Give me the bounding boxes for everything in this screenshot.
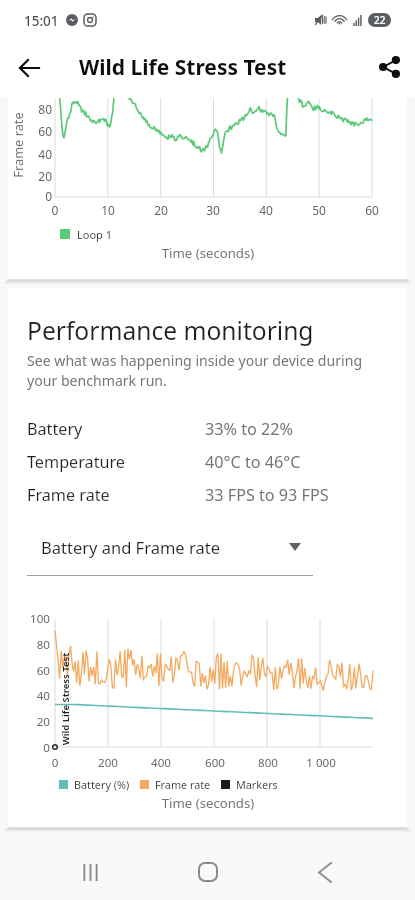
button[interactable]: Battery and Frame rate <box>27 524 313 576</box>
staticText: 80 <box>18 637 50 653</box>
staticText: 15:01 <box>24 12 59 27</box>
staticText: 20 <box>149 202 173 218</box>
staticText: 40 <box>18 688 50 704</box>
staticText: 40°C to 46°C <box>205 451 301 473</box>
button[interactable]: Share <box>367 38 411 96</box>
staticText: Temperature <box>27 451 125 473</box>
staticText: Battery <box>27 418 83 440</box>
staticText: Frame rate <box>27 484 110 506</box>
staticText: 30 <box>201 202 225 218</box>
staticText: Loop 1 <box>77 227 112 242</box>
staticText: Wild Life Stress Test <box>59 639 72 759</box>
staticText: Performance monitoring <box>27 314 314 348</box>
staticText: 40 <box>254 202 278 218</box>
staticText: 33 FPS to 93 FPS <box>205 484 329 506</box>
button[interactable]: Back <box>297 844 353 900</box>
staticText: Frame rate <box>9 102 26 188</box>
staticText: 100 <box>18 611 50 627</box>
staticText: See what was happening inside your devic… <box>27 351 372 390</box>
staticText: Wild Life Stress Test <box>79 53 287 82</box>
staticText: 22 <box>374 13 386 27</box>
staticText: Time (seconds) <box>108 794 308 812</box>
staticText: 0 <box>24 188 52 204</box>
staticText: 1 000 <box>301 755 341 771</box>
staticText: 50 <box>307 202 331 218</box>
staticText: Time (seconds) <box>108 244 308 262</box>
staticText: 10 <box>96 202 120 218</box>
staticText: 60 <box>24 123 52 139</box>
staticText: 20 <box>24 168 52 184</box>
staticText: 600 <box>195 755 235 771</box>
staticText: 400 <box>141 755 181 771</box>
staticText: 0 <box>43 202 67 218</box>
staticText: 33% to 22% <box>205 418 293 440</box>
staticText: Battery (%) <box>74 777 130 792</box>
staticText: Frame rate <box>155 777 211 792</box>
staticText: Battery and Frame rate <box>41 536 220 558</box>
staticText: 60 <box>18 663 50 679</box>
button[interactable]: Home <box>180 844 236 900</box>
button[interactable]: Recent apps <box>62 844 118 900</box>
staticText: Markers <box>236 777 278 792</box>
staticText: 60 <box>360 202 384 218</box>
staticText: 20 <box>18 714 50 730</box>
staticText: 40 <box>24 146 52 162</box>
staticText: 80 <box>24 101 52 117</box>
staticText: 0 <box>35 755 75 771</box>
staticText: 0 <box>18 740 50 756</box>
button[interactable]: Back <box>7 39 51 97</box>
staticText: 200 <box>88 755 128 771</box>
staticText: 800 <box>248 755 288 771</box>
